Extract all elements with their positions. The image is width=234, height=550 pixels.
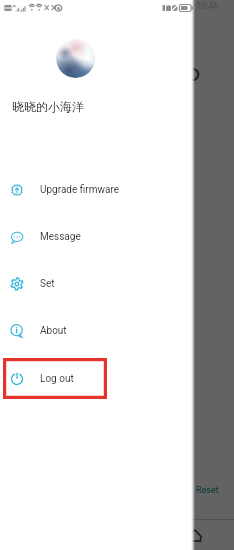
button[interactable]: Set <box>0 260 191 307</box>
other: Set <box>10 277 24 291</box>
staticText: 晓晓的小海洋 <box>12 99 84 114</box>
staticText: Set <box>40 278 55 290</box>
button[interactable]: Upgrade firmware <box>0 166 191 213</box>
other: Log out <box>10 372 24 386</box>
other: Message <box>10 230 24 244</box>
staticText: Upgrade firmware <box>40 184 120 196</box>
staticText: Log out <box>40 373 74 385</box>
button[interactable]: Log out <box>0 355 191 402</box>
other: Upgrade firmware <box>10 183 24 197</box>
staticText: About <box>40 325 67 337</box>
staticText: Reset <box>196 485 219 496</box>
staticText: Message <box>40 231 81 243</box>
staticText: 10:46 <box>196 1 219 12</box>
button[interactable]: About <box>0 307 191 354</box>
other: About <box>10 324 24 338</box>
button[interactable]: Message <box>0 213 191 260</box>
